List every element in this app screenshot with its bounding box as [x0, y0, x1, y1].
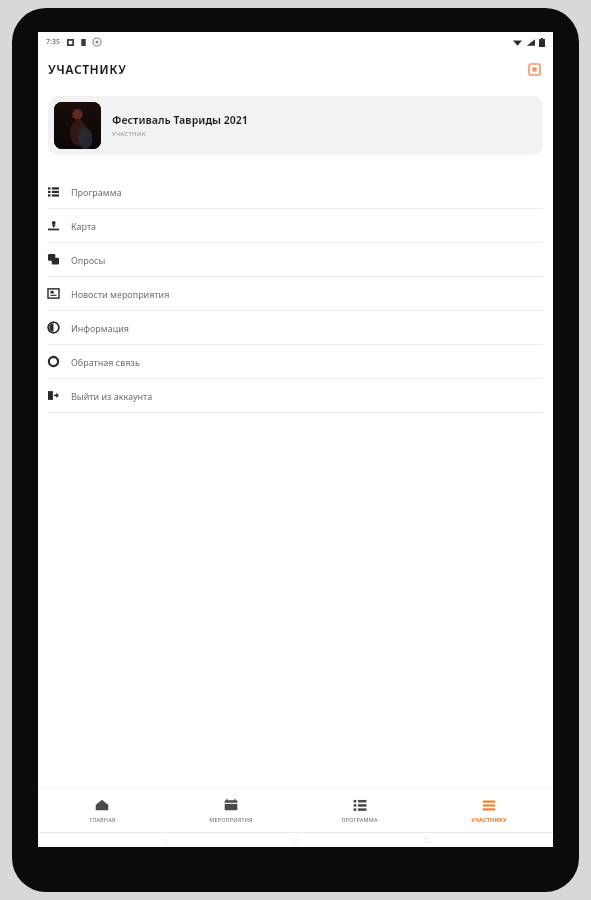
button[interactable]: УЧАСТНИКУ	[424, 788, 553, 832]
button[interactable]: Карта	[38, 209, 553, 242]
button[interactable]: Информация	[38, 311, 553, 344]
staticText: Обратная связь	[71, 356, 140, 368]
staticText: Информация	[71, 322, 129, 334]
staticText: УЧАСТНИКУ	[471, 816, 507, 823]
staticText: УЧАСТНИК	[112, 130, 146, 138]
staticText: ГЛАВНАЯ	[89, 816, 116, 823]
staticText: 7:35	[46, 37, 60, 47]
button[interactable]: Обратная связь	[38, 345, 553, 378]
button[interactable]: Выйти	[525, 60, 543, 78]
staticText: УЧАСТНИКУ	[48, 61, 127, 77]
staticText: Карта	[71, 220, 97, 232]
button[interactable]: ПРОГРАММА	[295, 788, 424, 832]
button[interactable]: МЕРОПРИЯТИЯ	[166, 788, 295, 832]
button[interactable]: ГЛАВНАЯ	[38, 788, 166, 832]
staticText: Новости мероприятия	[71, 288, 170, 300]
button[interactable]: Опросы	[38, 243, 553, 276]
staticText: Фестиваль Тавриды 2021	[112, 113, 248, 127]
button[interactable]: Программа	[38, 175, 553, 208]
button[interactable]: Новости мероприятия	[38, 277, 553, 310]
staticText: МЕРОПРИЯТИЯ	[209, 816, 253, 823]
button[interactable]: Выйти из аккаунта	[38, 379, 553, 412]
staticText: ПРОГРАММА	[341, 816, 378, 823]
staticText: Программа	[71, 186, 122, 198]
staticText: Выйти из аккаунта	[71, 390, 153, 402]
staticText: Опросы	[71, 254, 106, 266]
button[interactable]: Фестиваль Тавриды 2021	[48, 96, 543, 155]
